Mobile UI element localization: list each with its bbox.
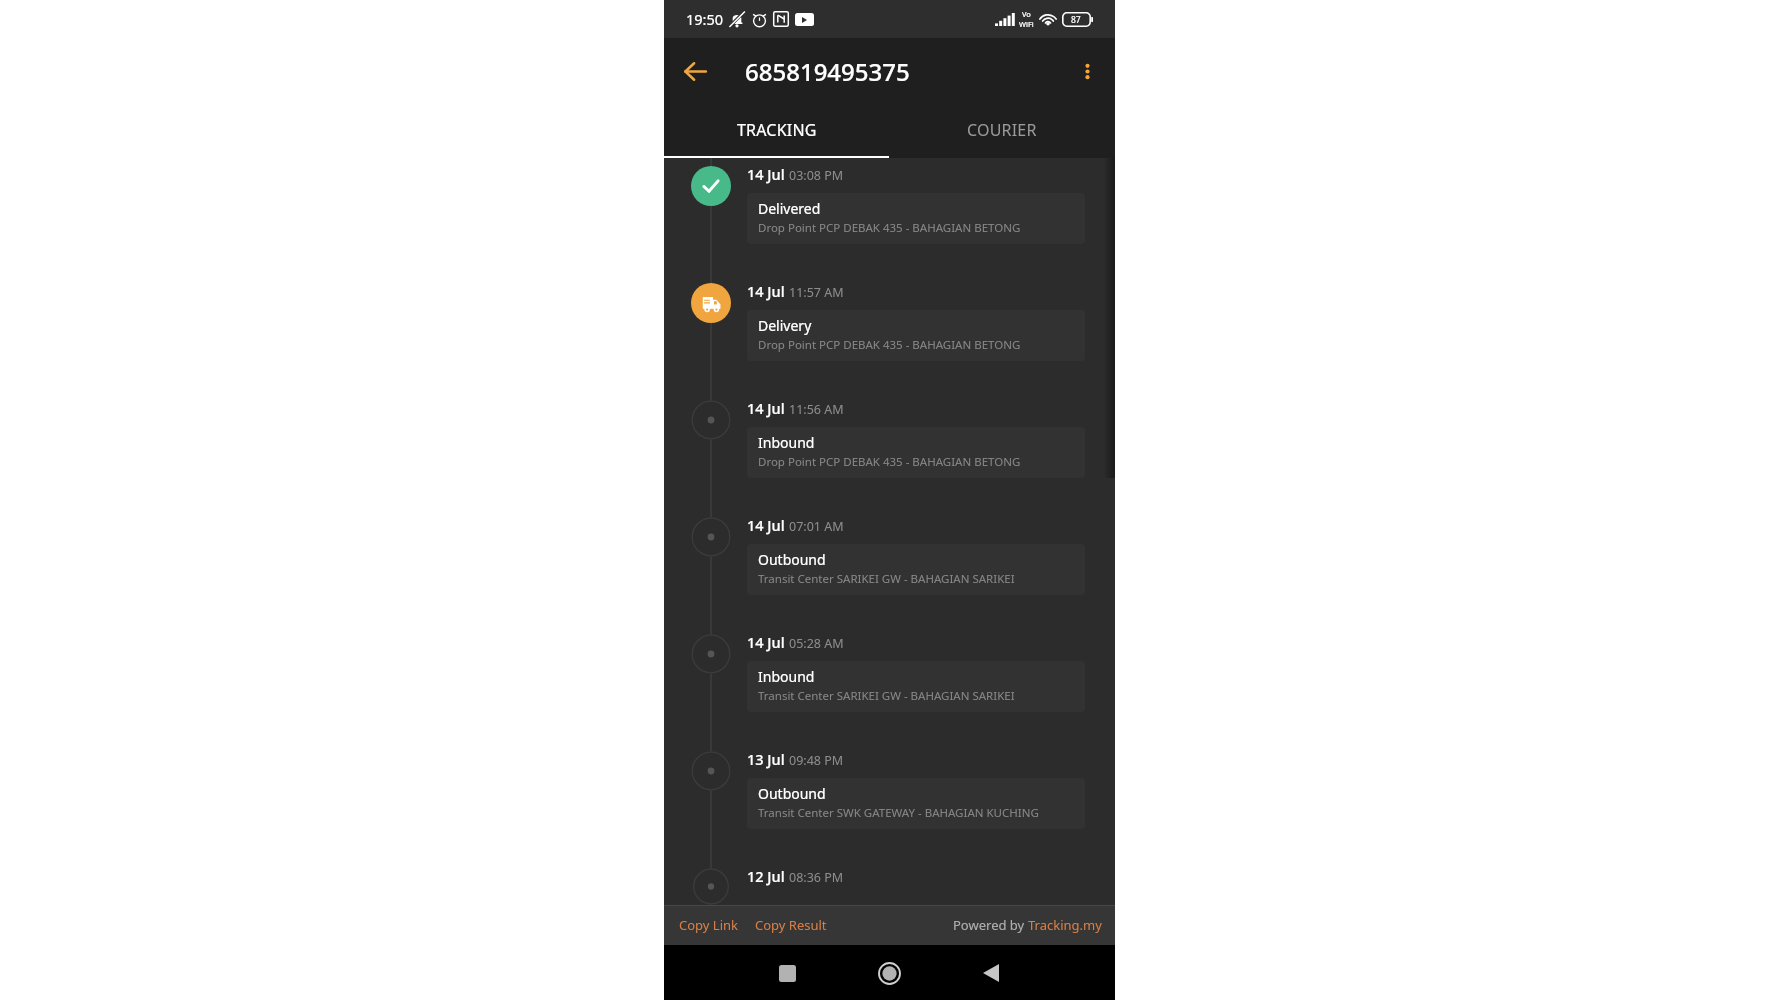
staticText: Drop Point PCP DEBAK 435 - BAHAGIAN BETO… [758, 337, 1021, 353]
staticText: Delivered [758, 199, 821, 218]
staticText: 87 [1071, 14, 1081, 26]
button[interactable]: Back [672, 48, 718, 94]
staticText: Drop Point PCP DEBAK 435 - BAHAGIAN BETO… [758, 454, 1021, 470]
staticText: Delivery [758, 316, 812, 335]
staticText: 07:01 AM [789, 518, 844, 535]
button[interactable]: Copy Result [755, 911, 827, 939]
staticText: 685819495375 [745, 55, 910, 88]
staticText: TRACKING [737, 119, 817, 141]
button[interactable]: Home [865, 949, 913, 997]
button[interactable]: Delivered [747, 193, 1085, 244]
staticText: 13 Jul [747, 749, 785, 769]
button[interactable]: Recents [763, 949, 811, 997]
staticText: Drop Point PCP DEBAK 435 - BAHAGIAN BETO… [758, 220, 1021, 236]
button[interactable]: TRACKING [664, 104, 889, 156]
staticText: 03:08 PM [789, 167, 844, 184]
staticText: Vo [1022, 9, 1031, 19]
staticText: Copy Result [755, 916, 827, 934]
staticText: 14 Jul [747, 281, 785, 301]
button[interactable]: Outbound [747, 544, 1085, 595]
button[interactable]: Inbound [747, 661, 1085, 712]
staticText: WiFi [1019, 19, 1034, 29]
staticText: 11:57 AM [789, 284, 844, 301]
button[interactable]: Copy Link [679, 911, 738, 939]
staticText: Outbound [758, 784, 826, 803]
staticText: Inbound [758, 433, 815, 452]
staticText: Copy Link [679, 916, 738, 934]
staticText: 09:48 PM [789, 752, 844, 769]
button[interactable]: More options [1066, 50, 1108, 92]
button[interactable]: Delivery [747, 310, 1085, 361]
staticText: 05:28 AM [789, 635, 844, 652]
button[interactable]: COURIER [889, 104, 1115, 156]
button[interactable]: Tracking.my [1028, 916, 1102, 934]
staticText: 14 Jul [747, 164, 785, 184]
button[interactable]: Outbound [747, 778, 1085, 829]
staticText: Transit Center SWK GATEWAY - BAHAGIAN KU… [758, 805, 1039, 821]
button[interactable]: Back [967, 949, 1015, 997]
staticText: Tracking.my [1028, 916, 1102, 934]
staticText: Outbound [758, 550, 826, 569]
button[interactable]: Inbound [747, 427, 1085, 478]
staticText: 14 Jul [747, 632, 785, 652]
staticText: Transit Center SARIKEI GW - BAHAGIAN SAR… [758, 571, 1015, 587]
staticText: 12 Jul [747, 866, 785, 886]
staticText: 14 Jul [747, 515, 785, 535]
staticText: Transit Center SARIKEI GW - BAHAGIAN SAR… [758, 688, 1015, 704]
staticText: 11:56 AM [789, 401, 844, 418]
staticText: COURIER [967, 119, 1037, 141]
staticText: Inbound [758, 667, 815, 686]
staticText: 08:36 PM [789, 869, 844, 886]
staticText: 14 Jul [747, 398, 785, 418]
staticText: 19:50 [686, 9, 724, 29]
staticText: Powered by [953, 916, 1028, 934]
